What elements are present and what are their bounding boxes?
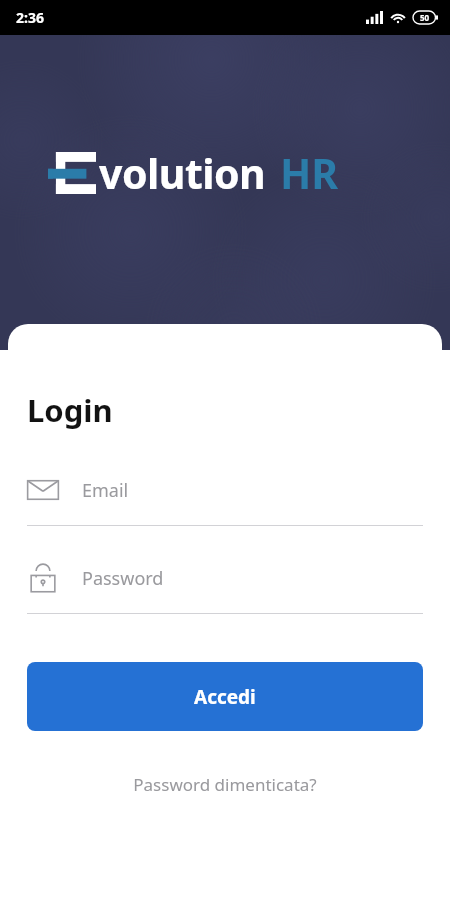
button[interactable]: Email xyxy=(27,468,423,526)
staticText: Password xyxy=(82,566,164,591)
staticText: Login xyxy=(27,389,113,431)
button[interactable]: Password xyxy=(27,556,423,614)
staticText: 50 xyxy=(420,12,430,23)
staticText: Accedi xyxy=(194,684,256,710)
button[interactable]: Password dimenticata? xyxy=(27,773,423,796)
staticText: Email xyxy=(82,478,129,503)
staticText: 2:36 xyxy=(16,8,44,27)
staticText: Password dimenticata? xyxy=(133,773,317,796)
staticText: HR xyxy=(280,145,339,201)
staticText: volution xyxy=(99,145,266,201)
button[interactable]: Accedi xyxy=(27,662,423,731)
